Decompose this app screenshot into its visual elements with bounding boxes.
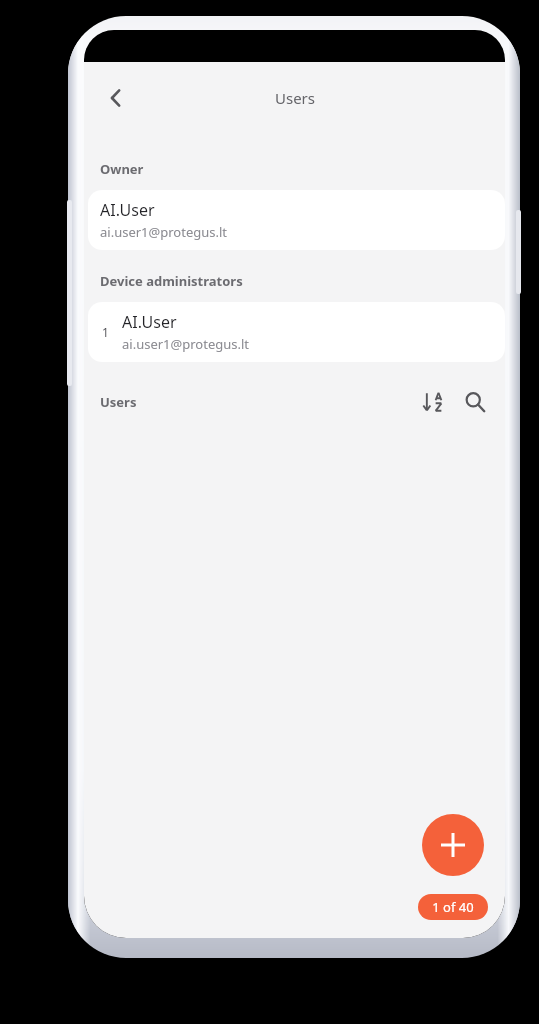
staticText: 1 [102, 324, 109, 340]
staticText: 1 of 40 [432, 898, 474, 916]
staticText: Users [275, 88, 315, 108]
staticText: Device administrators [100, 272, 243, 290]
button[interactable]: 1 of 40 [418, 894, 488, 920]
button[interactable]: AI.User [88, 190, 505, 250]
staticText: Users [100, 393, 137, 411]
button[interactable]: 1 [88, 302, 505, 362]
staticText: AI.User [122, 311, 177, 333]
button[interactable]: Sort [413, 382, 453, 422]
button[interactable]: Back [88, 70, 144, 126]
staticText: ai.user1@protegus.lt [100, 223, 227, 241]
button[interactable]: Add user [422, 814, 484, 876]
button[interactable]: Search [455, 382, 495, 422]
staticText: AI.User [100, 199, 155, 221]
staticText: ai.user1@protegus.lt [122, 335, 249, 353]
staticText: Owner [100, 160, 144, 178]
